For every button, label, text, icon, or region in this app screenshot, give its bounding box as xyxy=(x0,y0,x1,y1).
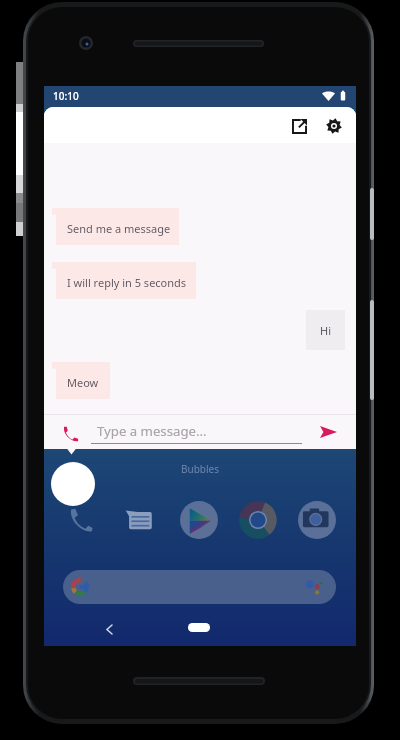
button[interactable]: Meow xyxy=(52,362,110,399)
button[interactable]: Home xyxy=(188,623,210,632)
button[interactable]: App xyxy=(119,499,161,541)
button[interactable]: App xyxy=(60,499,102,541)
button[interactable]: App xyxy=(178,499,220,541)
button[interactable]: Call xyxy=(54,417,86,449)
staticText: I will reply in 5 seconds xyxy=(67,275,187,290)
staticText: Send me a message xyxy=(67,221,171,236)
staticText: Bubbles xyxy=(181,462,219,476)
staticText: 10:10 xyxy=(53,89,79,103)
staticText: Type a message... xyxy=(97,422,207,440)
button[interactable]: Back xyxy=(97,617,121,641)
staticText: Meow xyxy=(67,375,99,390)
staticText: Hi xyxy=(320,323,331,338)
button[interactable]: Search xyxy=(63,570,336,604)
button[interactable]: Chat bubble xyxy=(51,462,95,506)
button[interactable]: Open in new window xyxy=(284,111,314,141)
button[interactable]: I will reply in 5 seconds xyxy=(52,262,196,299)
button[interactable]: App xyxy=(237,499,279,541)
button[interactable]: App xyxy=(296,499,338,541)
button[interactable]: Hi xyxy=(306,310,345,350)
button[interactable]: Type a message... xyxy=(91,416,302,447)
button[interactable]: Send xyxy=(312,416,344,448)
button[interactable]: Send me a message xyxy=(52,208,179,245)
button[interactable]: Settings xyxy=(319,111,349,141)
